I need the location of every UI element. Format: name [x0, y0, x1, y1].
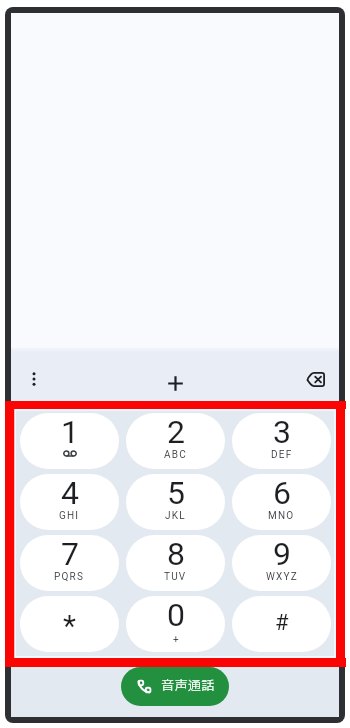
staticText: 6: [273, 474, 291, 512]
button[interactable]: 5: [126, 474, 225, 530]
staticText: TUV: [164, 571, 187, 583]
button[interactable]: [295, 359, 335, 399]
staticText: GHI: [59, 510, 80, 522]
staticText: 0: [167, 596, 185, 634]
staticText: WXYZ: [266, 571, 298, 583]
staticText: #: [275, 610, 289, 636]
button[interactable]: *: [20, 596, 119, 652]
button[interactable]: 4: [20, 474, 119, 530]
staticText: +: [173, 634, 179, 646]
button[interactable]: 1: [20, 413, 119, 469]
staticText: MNO: [268, 510, 295, 522]
staticText: 8: [167, 535, 185, 573]
staticText: 5: [167, 474, 185, 512]
staticText: DEF: [271, 449, 293, 461]
button[interactable]: [155, 363, 195, 403]
button[interactable]: #: [232, 596, 331, 652]
staticText: 音声通話: [161, 676, 216, 695]
staticText: PQRS: [54, 571, 85, 583]
button[interactable]: 7: [20, 535, 119, 591]
staticText: 3: [273, 413, 291, 451]
button[interactable]: 6: [232, 474, 331, 530]
button[interactable]: 3: [232, 413, 331, 469]
staticText: ABC: [164, 449, 187, 461]
staticText: 7: [61, 535, 79, 573]
button[interactable]: 2: [126, 413, 225, 469]
staticText: 9: [273, 535, 291, 573]
staticText: 2: [167, 413, 185, 451]
button[interactable]: 0: [126, 596, 225, 652]
button[interactable]: 音声通話: [121, 667, 229, 706]
button[interactable]: 9: [232, 535, 331, 591]
staticText: JKL: [165, 510, 186, 522]
button[interactable]: 8: [126, 535, 225, 591]
staticText: 1: [61, 413, 79, 451]
staticText: 4: [61, 474, 79, 512]
button[interactable]: [14, 359, 54, 399]
staticText: *: [63, 608, 76, 643]
